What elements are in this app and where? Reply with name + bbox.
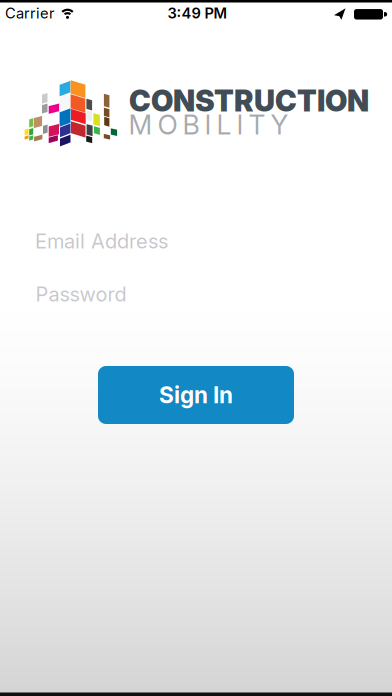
button[interactable]: Password: [35, 282, 285, 312]
button[interactable]: Sign In: [98, 366, 294, 424]
staticText: Carrier: [5, 4, 55, 22]
staticText: Sign In: [159, 382, 233, 408]
staticText: Email Address: [35, 229, 168, 253]
staticText: M O B I L I T Y: [128, 109, 288, 140]
staticText: CONSTRUCTION: [129, 83, 369, 118]
staticText: Password: [35, 282, 126, 306]
button[interactable]: Email Address: [35, 229, 285, 259]
staticText: 3:49 PM: [167, 4, 227, 22]
